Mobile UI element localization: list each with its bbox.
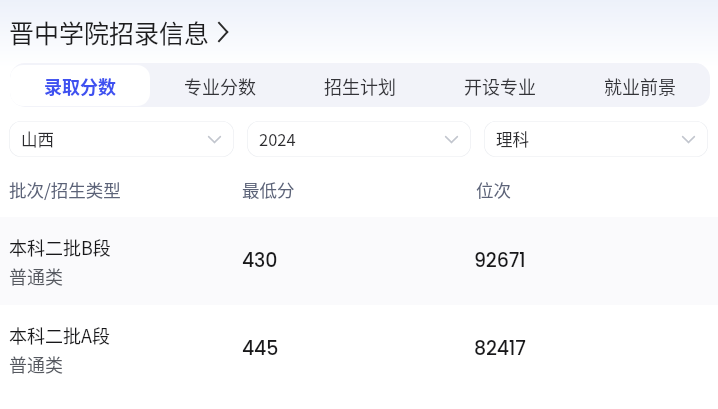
staticText: 82417	[474, 335, 526, 362]
staticText: 92671	[474, 247, 526, 274]
staticText: 430	[242, 247, 278, 274]
staticText: 就业前景	[604, 73, 676, 99]
button[interactable]: 晋中学院招录信息	[0, 0, 718, 63]
staticText: 普通类	[9, 263, 63, 289]
staticText: 开设专业	[464, 73, 536, 99]
staticText: 批次/招生类型	[9, 177, 242, 202]
button[interactable]: 本科二批A段	[0, 305, 718, 393]
staticText: 理科	[496, 127, 529, 151]
staticText: 普通类	[9, 351, 63, 377]
staticText: 录取分数	[44, 73, 116, 99]
staticText: 本科二批B段	[9, 234, 111, 260]
staticText: 专业分数	[184, 73, 256, 99]
staticText: 晋中学院招录信息	[9, 14, 210, 50]
staticText: 最低分	[242, 177, 476, 202]
button[interactable]: 专业分数	[150, 65, 290, 106]
staticText: 2024	[259, 127, 296, 151]
staticText: 招生计划	[324, 73, 396, 99]
staticText: 位次	[476, 177, 511, 202]
staticText: 本科二批A段	[9, 322, 110, 348]
button[interactable]: 录取分数	[10, 65, 150, 106]
button[interactable]: 就业前景	[570, 65, 710, 106]
button[interactable]: 开设专业	[430, 65, 570, 106]
button[interactable]: 本科二批B段	[0, 217, 718, 305]
button[interactable]: 招生计划	[290, 65, 430, 106]
staticText: 山西	[21, 127, 54, 151]
button[interactable]: 2024	[247, 121, 471, 157]
button[interactable]: 理科	[484, 121, 708, 157]
staticText: 445	[242, 335, 279, 362]
button[interactable]: 山西	[9, 121, 234, 157]
